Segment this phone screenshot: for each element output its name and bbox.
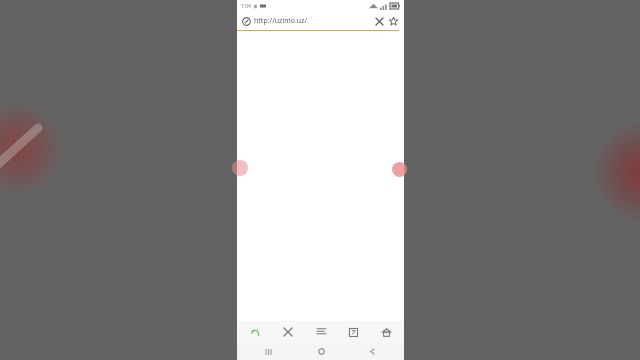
button[interactable]: Stop loading [373, 15, 385, 27]
button[interactable]: http://uzimo.uz/ [254, 16, 373, 26]
button[interactable]: Stop [273, 321, 303, 343]
button[interactable]: Back [240, 321, 270, 343]
button[interactable]: Home [371, 321, 401, 343]
button[interactable]: Menu [306, 321, 336, 343]
button[interactable]: Bookmark [387, 15, 399, 27]
staticText: http://uzimo.uz/ [254, 16, 308, 26]
button[interactable]: Site information [242, 17, 251, 26]
button[interactable]: Recent apps [249, 343, 289, 360]
button[interactable]: Back [352, 343, 392, 360]
button[interactable]: Tabs [338, 321, 368, 343]
staticText: 1:04 [241, 3, 251, 10]
button[interactable]: Home [301, 343, 341, 360]
